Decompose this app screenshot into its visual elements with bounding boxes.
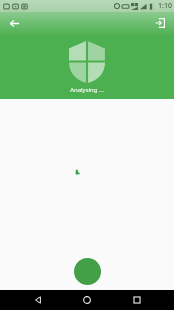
button[interactable]: Recents	[125, 290, 149, 310]
button[interactable]: Scan	[74, 258, 101, 285]
button[interactable]: Home	[75, 290, 99, 310]
button[interactable]: Back	[26, 290, 50, 310]
button[interactable]: Back	[4, 13, 24, 33]
staticText: Analysing ...	[70, 86, 104, 94]
staticText: 1:10	[158, 1, 172, 11]
button[interactable]: Export	[150, 13, 170, 33]
